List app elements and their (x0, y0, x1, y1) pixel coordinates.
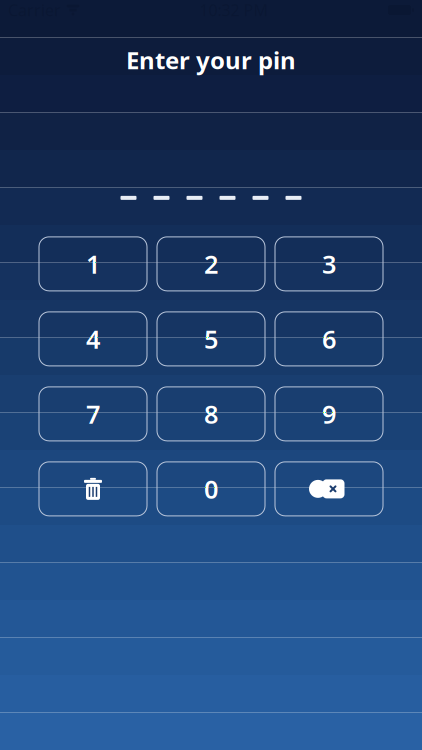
button[interactable]: 5 (157, 312, 265, 366)
button[interactable]: 7 (39, 387, 147, 441)
staticText: 3 (322, 247, 336, 281)
staticText: 8 (204, 397, 218, 431)
button[interactable]: 4 (39, 312, 147, 366)
button[interactable]: 0 (157, 462, 265, 516)
staticText: 7 (86, 397, 100, 431)
button[interactable]: 6 (275, 312, 383, 366)
button[interactable]: 1 (39, 237, 147, 291)
staticText: 1 (86, 247, 100, 281)
staticText: 4 (86, 322, 100, 356)
staticText: 9 (322, 397, 336, 431)
button[interactable]: 8 (157, 387, 265, 441)
button[interactable]: 3 (275, 237, 383, 291)
button[interactable]: 9 (275, 387, 383, 441)
button[interactable]: Clear (39, 462, 147, 516)
staticText: Enter your pin (126, 44, 296, 76)
button[interactable]: Backspace (275, 462, 383, 516)
staticText: 0 (204, 472, 218, 506)
staticText: 6 (322, 322, 336, 356)
staticText: 5 (204, 322, 218, 356)
button[interactable]: 2 (157, 237, 265, 291)
staticText: 2 (204, 247, 218, 281)
